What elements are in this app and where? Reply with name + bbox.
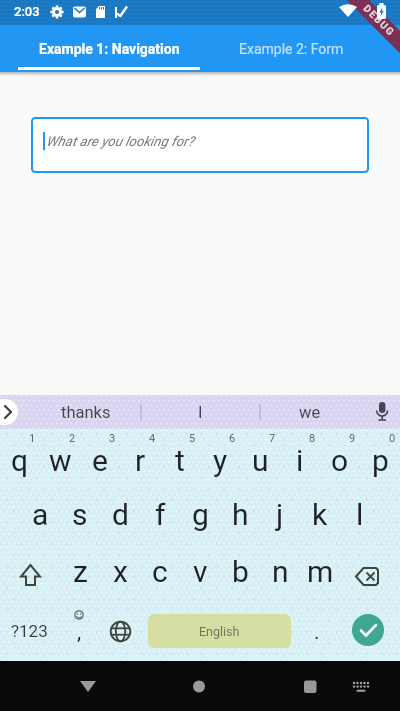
staticText: English	[199, 624, 240, 639]
staticText: g	[192, 497, 209, 532]
button[interactable]: English	[148, 614, 291, 648]
button[interactable]: m	[300, 543, 340, 600]
button[interactable]	[340, 543, 400, 600]
button[interactable]: g	[180, 486, 220, 543]
staticText: 7	[269, 432, 276, 445]
staticText: ?123	[11, 621, 48, 641]
staticText: c	[152, 554, 168, 589]
staticText: h	[232, 497, 249, 532]
staticText: 2:03	[14, 4, 40, 19]
button[interactable]: y	[200, 429, 240, 486]
staticText: x	[113, 554, 128, 589]
button[interactable]: n	[260, 543, 300, 600]
staticText: t	[175, 443, 185, 478]
staticText: e	[92, 443, 108, 478]
staticText: I	[198, 403, 203, 422]
staticText: Example 1: Navigation	[39, 41, 180, 57]
staticText: o	[331, 443, 349, 478]
staticText: s	[72, 497, 88, 532]
button[interactable]: f	[140, 486, 180, 543]
button[interactable]: b	[220, 543, 260, 600]
button[interactable]: k	[300, 486, 340, 543]
staticText: 4	[149, 432, 156, 445]
staticText: ,	[77, 620, 82, 645]
staticText: 9	[349, 432, 356, 445]
button[interactable]: w	[40, 429, 80, 486]
button[interactable]: ,	[58, 600, 100, 661]
staticText: b	[232, 554, 249, 589]
button[interactable]	[72, 670, 104, 702]
staticText: 5	[189, 432, 196, 445]
staticText: 2	[69, 432, 76, 445]
button[interactable]: x	[100, 543, 140, 600]
staticText: What are you looking for?	[46, 133, 194, 149]
button[interactable]: .	[300, 600, 334, 661]
staticText: 6	[229, 432, 236, 445]
button[interactable]: we	[260, 395, 360, 429]
button[interactable]: i	[280, 429, 320, 486]
staticText: p	[372, 443, 389, 478]
staticText: j	[276, 497, 284, 532]
button[interactable]: u	[240, 429, 280, 486]
button[interactable]: h	[220, 486, 260, 543]
button[interactable]: q	[0, 429, 40, 486]
staticText: l	[356, 497, 364, 532]
button[interactable]: a	[20, 486, 60, 543]
button[interactable]: p	[360, 429, 400, 486]
staticText: d	[112, 497, 129, 532]
button[interactable]	[345, 670, 377, 702]
button[interactable]: t	[160, 429, 200, 486]
staticText: .	[314, 620, 320, 645]
staticText: a	[32, 497, 49, 532]
button[interactable]: l	[340, 486, 380, 543]
button[interactable]: z	[60, 543, 100, 600]
button[interactable]: e	[80, 429, 120, 486]
staticText: 3	[109, 432, 116, 445]
staticText: f	[155, 497, 166, 532]
staticText: we	[299, 403, 321, 422]
staticText: k	[312, 497, 328, 532]
staticText: 8	[309, 432, 316, 445]
button[interactable]: ?123	[0, 600, 58, 661]
button[interactable]	[183, 670, 215, 702]
button[interactable]	[294, 670, 326, 702]
button[interactable]: d	[100, 486, 140, 543]
staticText: q	[11, 443, 29, 478]
button[interactable]	[100, 600, 142, 661]
button[interactable]: Example 1: Navigation	[18, 25, 200, 72]
staticText: Example 2: Form	[239, 41, 344, 57]
button[interactable]: What are you looking for?	[31, 117, 369, 173]
button[interactable]: s	[60, 486, 100, 543]
staticText: y	[213, 443, 228, 478]
staticText: z	[73, 554, 88, 589]
staticText: w	[49, 443, 72, 478]
staticText: 0	[389, 432, 396, 445]
staticText: thanks	[61, 403, 111, 422]
button[interactable]	[352, 614, 384, 646]
button[interactable]: I	[150, 395, 250, 429]
staticText: i	[296, 443, 304, 478]
staticText: r	[135, 443, 146, 478]
button[interactable]: o	[320, 429, 360, 486]
button[interactable]: r	[120, 429, 160, 486]
staticText: u	[252, 443, 269, 478]
staticText: v	[193, 554, 208, 589]
button[interactable]: v	[180, 543, 220, 600]
button[interactable]: j	[260, 486, 300, 543]
staticText: 1	[29, 432, 36, 445]
staticText: m	[307, 554, 334, 589]
staticText: DEBUG	[361, 3, 397, 39]
staticText: n	[272, 554, 289, 589]
button[interactable]: Example 2: Form	[200, 25, 382, 72]
button[interactable]: thanks	[36, 395, 136, 429]
button[interactable]: c	[140, 543, 180, 600]
button[interactable]	[0, 543, 60, 600]
